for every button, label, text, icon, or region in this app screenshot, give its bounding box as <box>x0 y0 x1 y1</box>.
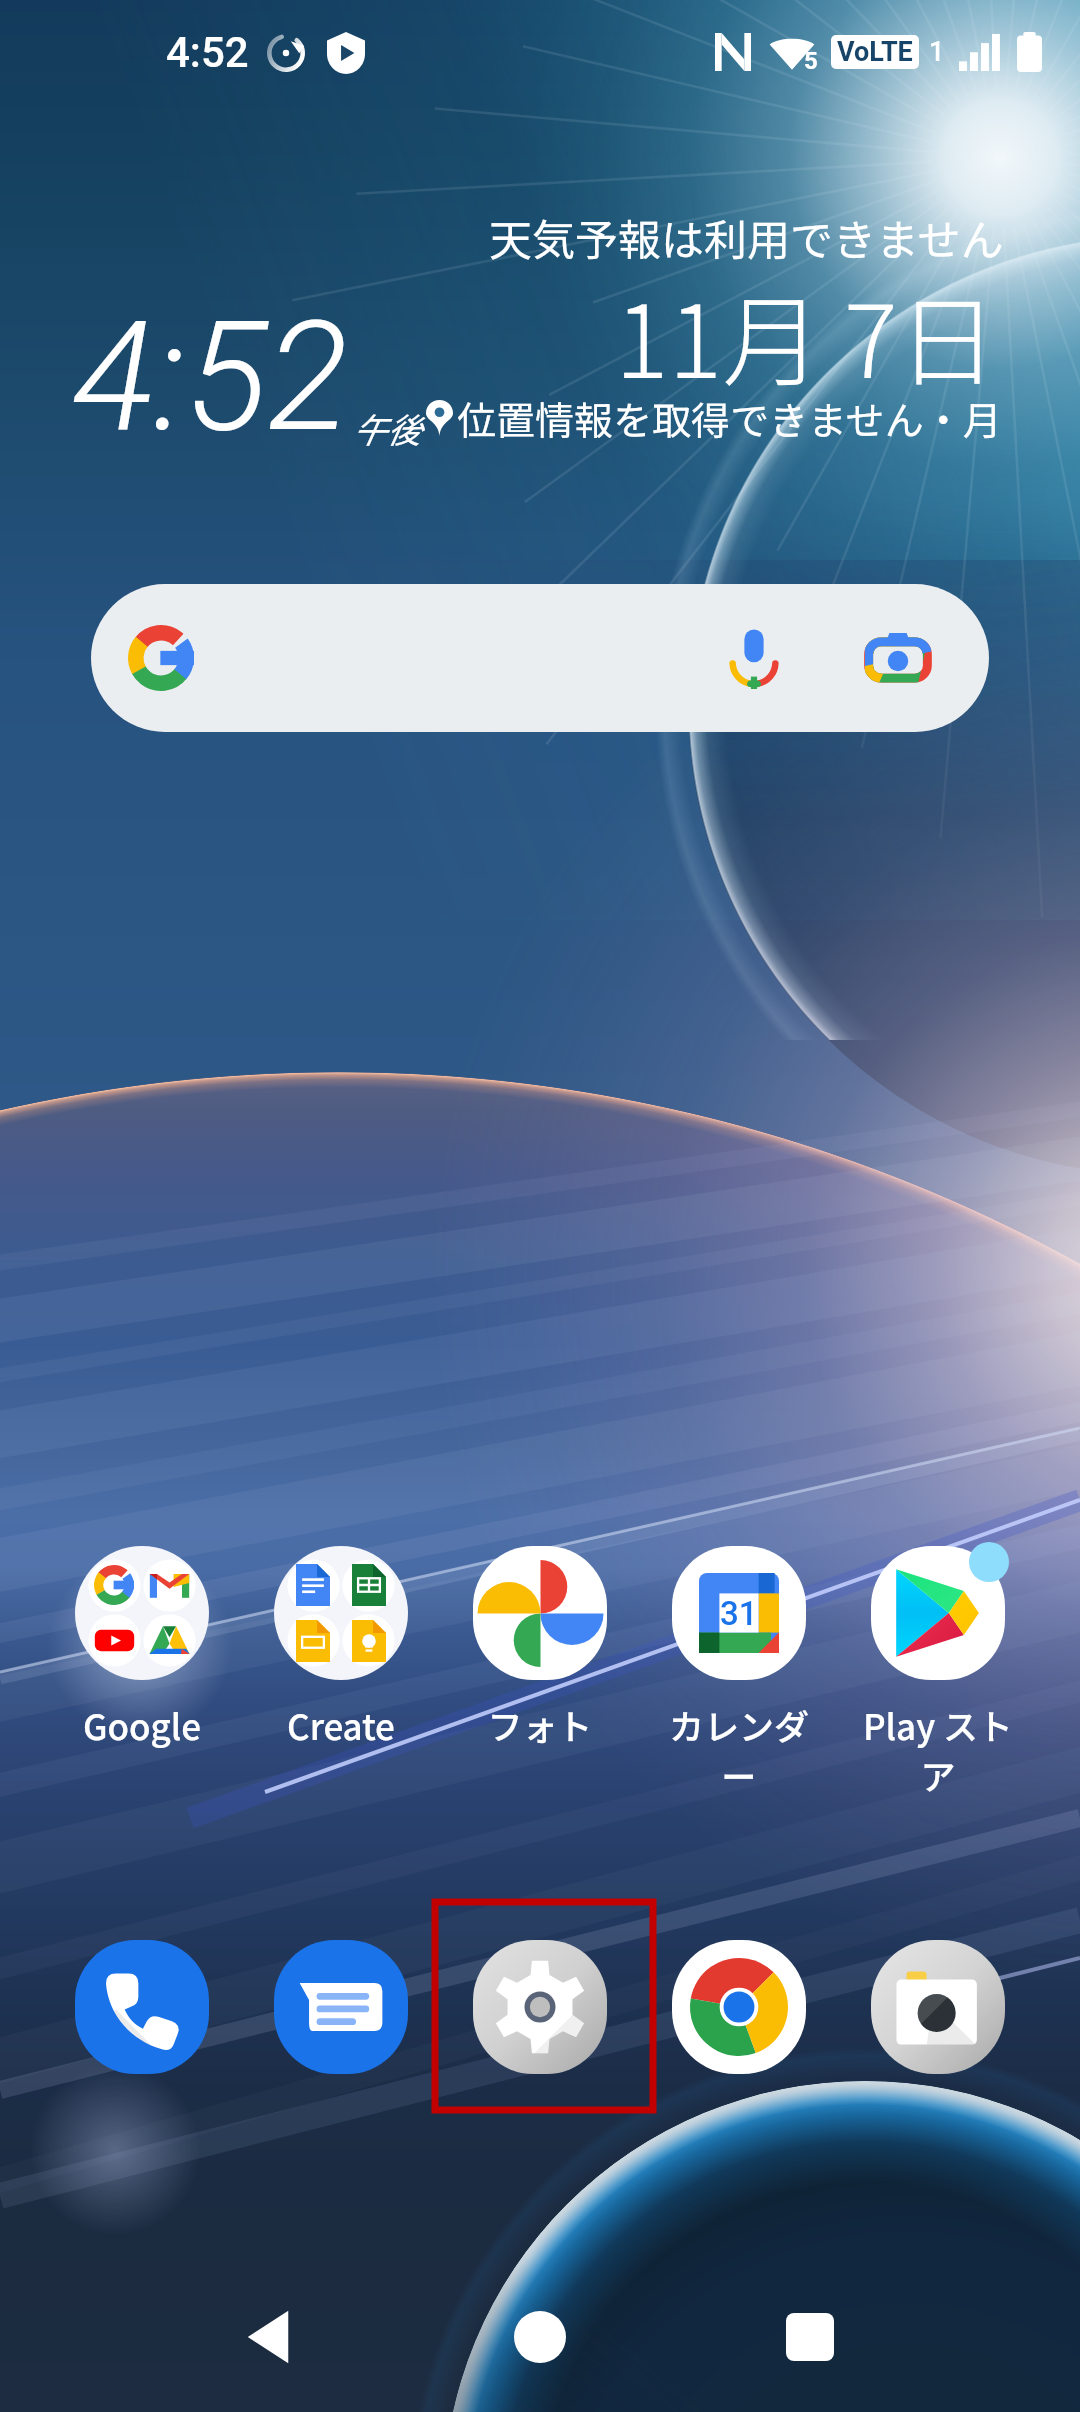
staticText: 1 <box>929 36 945 68</box>
staticText: 天気予報は利用できません <box>489 206 1004 268</box>
staticText: 4:52 <box>72 288 349 466</box>
button[interactable]: Google <box>52 1546 232 1796</box>
button[interactable]: Phone <box>75 1940 209 2074</box>
button[interactable]: Home <box>480 2277 600 2397</box>
staticText: 午後 <box>352 404 420 453</box>
button[interactable]: Back <box>208 2277 328 2397</box>
button[interactable]: Camera <box>871 1940 1005 2074</box>
button[interactable]: Play ストア <box>848 1546 1028 1796</box>
staticText: 5 <box>804 47 818 75</box>
button[interactable]: フォト <box>450 1546 630 1796</box>
button[interactable]: Settings <box>473 1940 607 2074</box>
staticText: VoLTE <box>837 36 913 68</box>
staticText: Create <box>262 1699 420 1750</box>
button[interactable]: Google Lens <box>855 615 941 701</box>
staticText: 31 <box>720 1594 758 1633</box>
staticText: カレンダー <box>660 1699 818 1796</box>
staticText: フォト <box>461 1699 619 1750</box>
button[interactable]: Messages <box>274 1940 408 2074</box>
staticText: Google <box>63 1699 221 1750</box>
staticText: Play ストア <box>859 1699 1017 1796</box>
button[interactable]: Chrome <box>672 1940 806 2074</box>
staticText: 4:52 <box>166 28 249 77</box>
button[interactable]: 31 <box>649 1546 829 1796</box>
staticText: 位置情報を取得できません・月 <box>457 390 1002 446</box>
button[interactable]: Voice search <box>711 615 797 701</box>
staticText: 11月 7日 <box>615 262 998 407</box>
button[interactable]: Recent apps <box>750 2277 870 2397</box>
button[interactable]: Voice search <box>91 584 989 732</box>
button[interactable]: Create <box>251 1546 431 1796</box>
